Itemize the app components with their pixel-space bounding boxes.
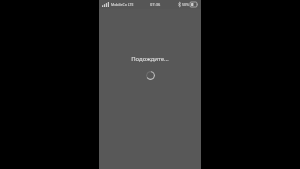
- staticText: Подождите…: [131, 55, 169, 63]
- staticText: 07:36: [150, 2, 161, 7]
- staticText: MobileCo LTE: [111, 2, 134, 7]
- button[interactable]: Loading: [146, 71, 155, 80]
- staticText: 50%: [182, 2, 189, 7]
